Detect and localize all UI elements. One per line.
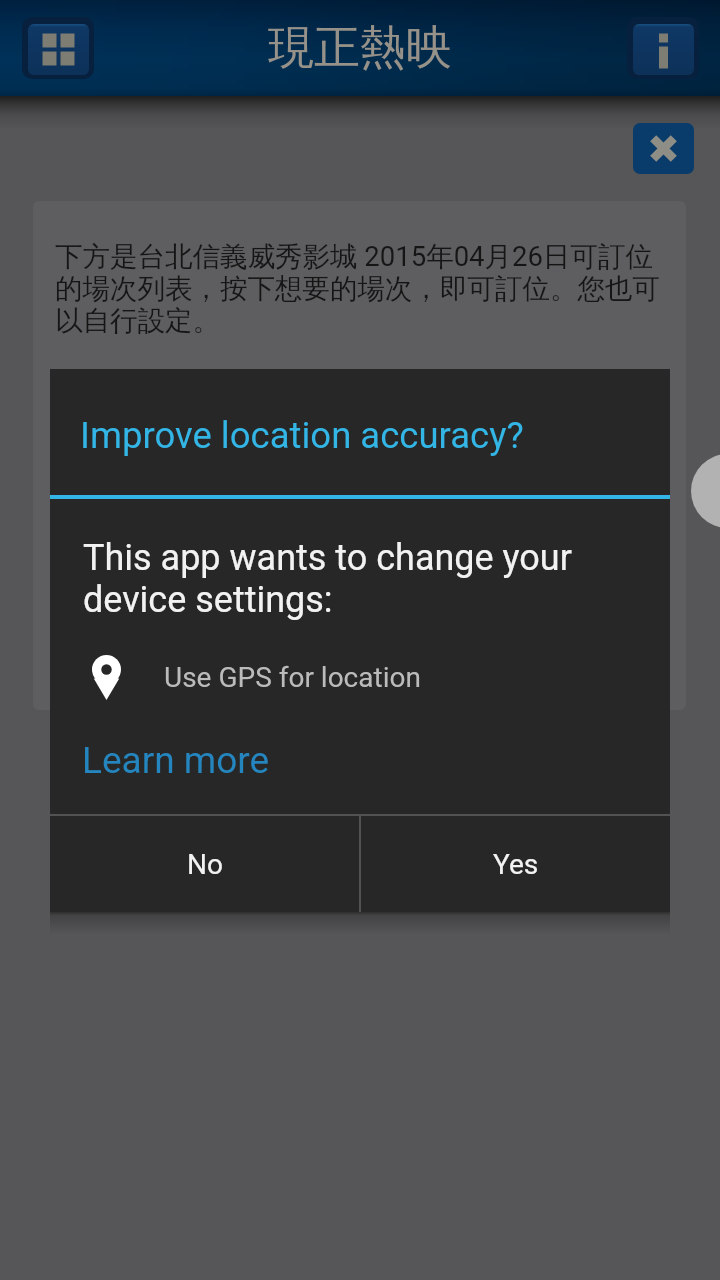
button[interactable]: Learn more [82, 739, 270, 782]
button[interactable]: No [50, 816, 359, 912]
staticText: Learn more [82, 739, 270, 782]
button[interactable]: Information [627, 17, 699, 79]
staticText: 現正熱映 [268, 19, 452, 77]
staticText: Yes [493, 848, 539, 881]
staticText: 下方是台北信義威秀影城 2015年04月26日可訂位的場次列表，按下想要的場次，… [55, 240, 661, 338]
button[interactable]: Apps [22, 17, 94, 79]
staticText: Improve location accuracy? [80, 414, 524, 457]
button[interactable]: Yes [361, 816, 670, 912]
staticText: Use GPS for location [164, 661, 421, 694]
staticText: This app wants to change your device set… [83, 537, 628, 621]
button[interactable]: Close [633, 123, 694, 174]
staticText: No [187, 848, 223, 881]
